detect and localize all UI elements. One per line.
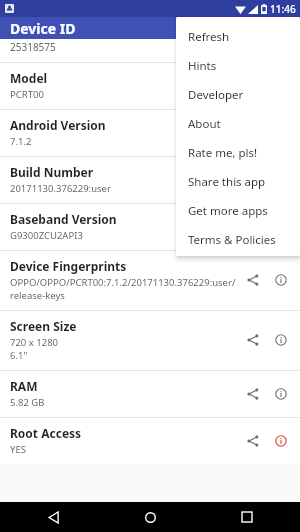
button[interactable]: Share RAM xyxy=(240,381,266,407)
staticText: Build Number xyxy=(10,164,94,180)
button[interactable]: Info about Screen Size xyxy=(268,327,294,353)
staticText: Model xyxy=(10,70,48,86)
button[interactable]: Hints xyxy=(176,51,300,80)
staticText: Device Fingerprints xyxy=(10,258,127,274)
staticText: Android Version xyxy=(10,117,106,133)
button[interactable]: Share Root Access xyxy=(240,428,266,454)
button[interactable]: Model xyxy=(0,63,300,109)
button[interactable]: Developer xyxy=(176,80,300,109)
button[interactable]: Back xyxy=(40,504,66,530)
staticText: Share this app xyxy=(188,174,266,190)
button[interactable]: Info about Root Access xyxy=(268,428,294,454)
staticText: Baseband Version xyxy=(10,211,117,227)
staticText: Screen Size xyxy=(10,318,77,334)
staticText: Refresh xyxy=(188,29,230,45)
staticText: OPPO/OPPO/PCRT00:7.1.2/20171130.376229:u… xyxy=(10,276,236,289)
button[interactable]: Home xyxy=(137,504,163,530)
staticText: 25318575 xyxy=(10,40,56,54)
button[interactable]: Info about Device Fingerprints xyxy=(268,267,294,293)
button[interactable]: Device Fingerprints xyxy=(0,251,300,310)
staticText: 5.82 GB xyxy=(10,396,45,409)
button[interactable]: Baseband Version xyxy=(0,204,300,250)
staticText: Root Access xyxy=(10,425,82,441)
button[interactable]: Rate me, pls! xyxy=(176,138,300,167)
staticText: Rate me, pls! xyxy=(188,145,258,161)
button[interactable]: Share Device Fingerprints xyxy=(240,267,266,293)
button[interactable]: Terms & Policies xyxy=(176,225,300,254)
button[interactable]: Root Access xyxy=(0,418,300,464)
staticText: 6.1" xyxy=(10,349,28,362)
button[interactable]: Build Number xyxy=(0,157,300,203)
staticText: Device ID xyxy=(10,19,76,38)
staticText: release-keys xyxy=(10,289,65,302)
staticText: PCRT00 xyxy=(10,88,44,101)
staticText: 11:46 xyxy=(270,2,296,16)
button[interactable]: Screen Size xyxy=(0,311,300,370)
staticText: G9300ZCU2API3 xyxy=(10,229,83,242)
staticText: 7.1.2 xyxy=(10,135,32,148)
staticText: Get more apps xyxy=(188,203,268,219)
staticText: Developer xyxy=(188,87,244,103)
button[interactable]: Device ID xyxy=(0,17,300,39)
staticText: 720 x 1280 xyxy=(10,336,59,349)
button[interactable]: Refresh xyxy=(176,22,300,51)
staticText: Terms & Policies xyxy=(188,232,276,248)
button[interactable]: Recent apps xyxy=(234,504,260,530)
staticText: RAM xyxy=(10,378,38,394)
staticText: 20171130.376229:user xyxy=(10,182,111,195)
staticText: About xyxy=(188,116,221,132)
staticText: YES xyxy=(10,443,26,456)
staticText: Hints xyxy=(188,58,217,74)
button[interactable]: About xyxy=(176,109,300,138)
button[interactable]: RAM xyxy=(0,371,300,417)
button[interactable]: Info about RAM xyxy=(268,381,294,407)
button[interactable]: 25318575 xyxy=(0,39,300,62)
button[interactable]: Android Version xyxy=(0,110,300,156)
button[interactable]: Share this app xyxy=(176,167,300,196)
button[interactable]: Share Screen Size xyxy=(240,327,266,353)
button[interactable]: Get more apps xyxy=(176,196,300,225)
